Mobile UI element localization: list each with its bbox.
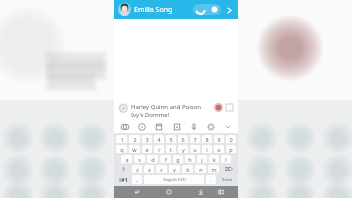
- staticText: 7: [193, 136, 197, 143]
- staticText: b: [186, 166, 190, 173]
- button[interactable]: l: [221, 155, 231, 163]
- staticText: t: [170, 146, 172, 153]
- button[interactable]: 9: [214, 135, 224, 143]
- button[interactable]: k: [209, 155, 219, 163]
- button[interactable]: ,: [132, 175, 142, 184]
- button[interactable]: z: [132, 165, 142, 173]
- button[interactable]: f: [160, 155, 171, 163]
- button[interactable]: 8: [202, 135, 212, 143]
- button[interactable]: Emoji: [117, 121, 132, 133]
- button[interactable]: 4: [154, 135, 164, 143]
- button[interactable]: e: [142, 145, 152, 153]
- staticText: ⇧: [121, 166, 126, 172]
- button[interactable]: Audio call: [193, 4, 207, 15]
- staticText: j: [201, 156, 203, 163]
- staticText: z: [136, 166, 139, 173]
- button[interactable]: x: [144, 165, 154, 173]
- button[interactable]: !#1: [116, 175, 130, 184]
- button[interactable]: Send: [218, 175, 236, 184]
- staticText: w: [132, 146, 137, 153]
- button[interactable]: Mood: [134, 121, 149, 133]
- staticText: ,: [136, 176, 138, 183]
- button[interactable]: s: [134, 155, 145, 163]
- staticText: 2: [133, 136, 137, 143]
- staticText: y: [182, 146, 185, 153]
- staticText: 9: [217, 136, 221, 143]
- button[interactable]: p: [226, 145, 236, 153]
- button[interactable]: g: [173, 155, 183, 163]
- button[interactable]: Home: [162, 186, 176, 198]
- button[interactable]: w: [129, 145, 140, 153]
- staticText: 6: [181, 136, 185, 143]
- button[interactable]: Sticker: [214, 103, 223, 112]
- button[interactable]: Video call: [207, 4, 221, 15]
- button[interactable]: Back: [130, 186, 144, 198]
- staticText: Harley Quinn and Poison: [131, 103, 201, 111]
- staticText: .: [210, 176, 212, 183]
- button[interactable]: 2: [129, 135, 140, 143]
- staticText: k: [213, 156, 216, 163]
- staticText: !#1: [119, 176, 128, 183]
- button[interactable]: y: [178, 145, 188, 153]
- button[interactable]: o: [214, 145, 224, 153]
- button[interactable]: Calendar: [151, 121, 166, 133]
- staticText: r: [158, 146, 161, 153]
- button[interactable]: j: [197, 155, 207, 163]
- button[interactable]: Hide keyboard: [194, 186, 208, 198]
- button[interactable]: 7: [190, 135, 200, 143]
- staticText: l: [225, 156, 227, 163]
- button[interactable]: q: [116, 145, 127, 153]
- staticText: c: [160, 166, 163, 173]
- staticText: m: [211, 166, 217, 173]
- button[interactable]: Recents: [214, 186, 228, 198]
- button[interactable]: h: [185, 155, 195, 163]
- staticText: a: [125, 156, 129, 163]
- staticText: d: [151, 156, 155, 163]
- button[interactable]: Gallery: [169, 121, 184, 133]
- button[interactable]: Voice: [186, 121, 201, 133]
- button[interactable]: 5: [166, 135, 176, 143]
- button[interactable]: m: [208, 165, 219, 173]
- button[interactable]: r: [154, 145, 164, 153]
- button[interactable]: v: [169, 165, 180, 173]
- staticText: u: [193, 146, 197, 153]
- staticText: q: [120, 146, 124, 153]
- staticText: o: [217, 146, 221, 153]
- staticText: f: [165, 156, 167, 163]
- button[interactable]: Add: [118, 103, 128, 113]
- button[interactable]: c: [156, 165, 167, 173]
- staticText: x: [148, 166, 151, 173]
- button[interactable]: b: [182, 165, 193, 173]
- button[interactable]: n: [195, 165, 206, 173]
- button[interactable]: ⇧: [116, 165, 130, 173]
- button[interactable]: Image: [225, 103, 234, 112]
- button[interactable]: d: [147, 155, 158, 163]
- button[interactable]: .: [206, 175, 216, 184]
- staticText: h: [188, 156, 192, 163]
- staticText: e: [145, 146, 149, 153]
- button[interactable]: Profile: [118, 3, 131, 16]
- button[interactable]: 0: [226, 135, 236, 143]
- staticText: Ivy's Dommeǃ: [131, 111, 170, 119]
- staticText: 1: [120, 136, 124, 143]
- button[interactable]: Settings: [203, 121, 218, 133]
- button[interactable]: u: [190, 145, 200, 153]
- staticText: English (US): [163, 177, 186, 182]
- button[interactable]: English (US): [144, 175, 204, 184]
- button[interactable]: 1: [116, 135, 127, 143]
- staticText: n: [199, 166, 203, 173]
- staticText: 0: [229, 136, 233, 143]
- staticText: Send: [222, 177, 232, 182]
- staticText: g: [176, 156, 180, 163]
- button[interactable]: 6: [178, 135, 188, 143]
- button[interactable]: ⌦: [221, 165, 236, 173]
- staticText: 3: [145, 136, 149, 143]
- button[interactable]: 3: [142, 135, 152, 143]
- staticText: 8: [205, 136, 209, 143]
- button[interactable]: i: [202, 145, 212, 153]
- button[interactable]: t: [166, 145, 176, 153]
- staticText: Emilia Song: [134, 5, 173, 15]
- button[interactable]: a: [121, 155, 132, 163]
- button[interactable]: Expand: [220, 121, 235, 133]
- button[interactable]: More: [224, 5, 234, 15]
